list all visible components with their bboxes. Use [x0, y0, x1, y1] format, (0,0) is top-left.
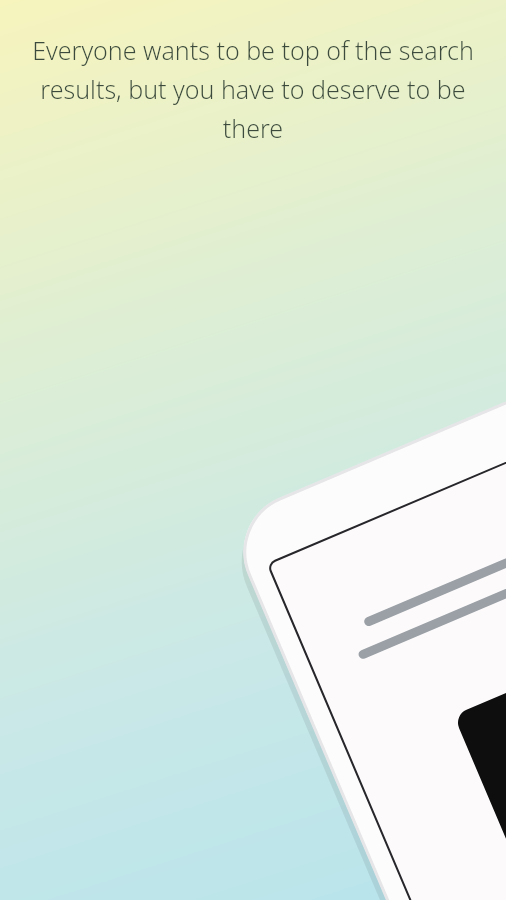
button[interactable]: WhatsApp Web device preview [286, 700, 506, 900]
staticText: Everyone wants to be top of the search r… [26, 33, 480, 145]
button[interactable]: Everyone wants to be top of the search r… [26, 33, 480, 145]
